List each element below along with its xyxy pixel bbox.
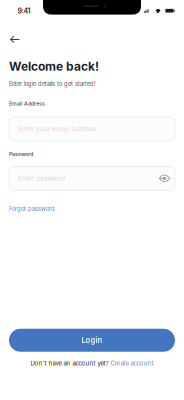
button[interactable]: Login: [9, 329, 175, 352]
button[interactable]: Show password: [159, 175, 170, 182]
staticText: Password: [9, 151, 33, 157]
staticText: Create account: [110, 360, 153, 367]
staticText: 9:41: [17, 7, 30, 15]
staticText: Welcome back!: [9, 59, 99, 73]
button[interactable]: Create account: [110, 360, 153, 367]
staticText: Login: [81, 336, 102, 345]
staticText: Enter password: [18, 174, 65, 182]
staticText: Enter your email address: [18, 125, 96, 133]
staticText: Forgot password: [9, 205, 55, 212]
staticText: Enter login details to get started!: [9, 80, 96, 87]
button[interactable]: Back: [9, 30, 30, 48]
button[interactable]: Forgot password: [9, 190, 55, 212]
staticText: Email Address: [9, 100, 45, 107]
staticText: Don't have an account yet?: [30, 360, 108, 367]
